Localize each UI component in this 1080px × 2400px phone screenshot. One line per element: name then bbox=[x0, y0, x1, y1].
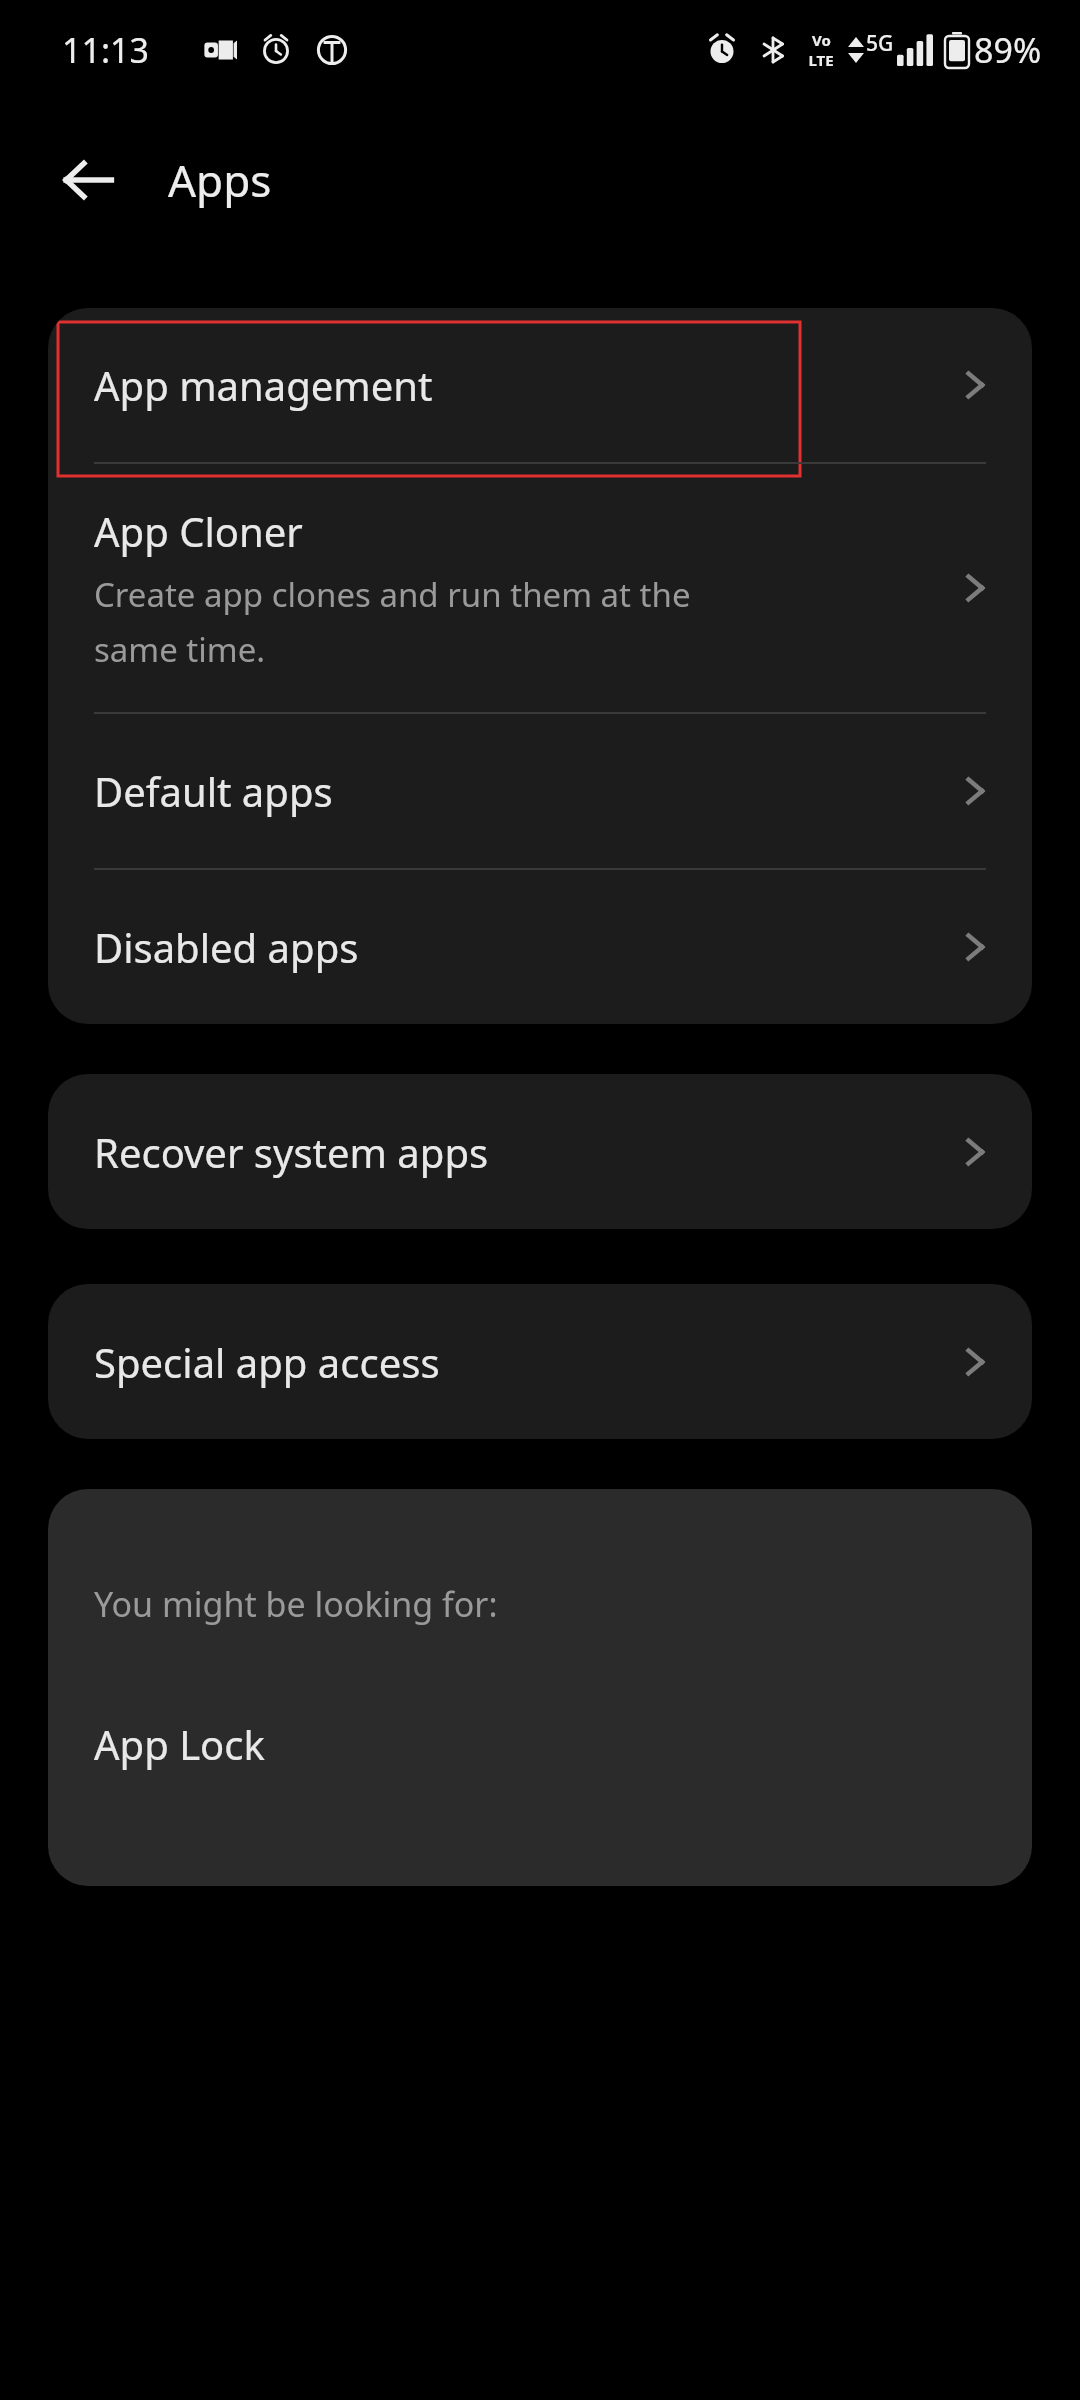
button[interactable]: App Lock bbox=[48, 1689, 1032, 1799]
button[interactable]: Disabled apps bbox=[48, 870, 1032, 1024]
button[interactable]: App Cloner bbox=[48, 464, 1032, 712]
staticText: 11:13 bbox=[62, 27, 149, 73]
staticText: Vo bbox=[812, 30, 831, 50]
staticText: App management bbox=[94, 358, 433, 412]
staticText: 89% bbox=[974, 27, 1042, 73]
staticText: Apps bbox=[168, 150, 272, 210]
staticText: LTE bbox=[808, 50, 834, 70]
staticText: Special app access bbox=[94, 1335, 440, 1389]
button[interactable]: Recover system apps bbox=[48, 1074, 1032, 1229]
staticText: Create app clones and run them at the sa… bbox=[94, 572, 691, 672]
button[interactable]: Back bbox=[40, 132, 136, 228]
staticText: 5G bbox=[866, 29, 894, 58]
button[interactable]: Special app access bbox=[48, 1284, 1032, 1439]
staticText: You might be looking for: bbox=[94, 1581, 498, 1627]
staticText: Disabled apps bbox=[94, 920, 359, 974]
staticText: Recover system apps bbox=[94, 1125, 489, 1179]
button[interactable]: Default apps bbox=[48, 714, 1032, 868]
staticText: App Cloner bbox=[94, 504, 303, 558]
button[interactable]: App management bbox=[48, 308, 1032, 462]
staticText: App Lock bbox=[94, 1717, 265, 1771]
staticText: Default apps bbox=[94, 764, 333, 818]
